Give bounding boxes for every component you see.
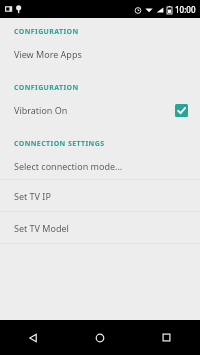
staticText: View More Apps (14, 48, 188, 60)
staticText: Select connection mode... (14, 160, 188, 172)
staticText: CONFIGURATION (14, 27, 79, 37)
button[interactable]: Home (66, 320, 133, 355)
staticText: Set TV IP (14, 190, 188, 202)
staticText: CONFIGURATION (14, 83, 79, 93)
button[interactable]: Back (0, 320, 66, 355)
button[interactable]: Vibration On checkbox (175, 104, 188, 117)
button[interactable]: View More Apps (0, 41, 200, 67)
staticText: 10:00 (175, 4, 196, 15)
staticText: Set TV Model (14, 222, 188, 234)
button[interactable]: Recents (133, 320, 200, 355)
button[interactable]: Set TV IP (0, 180, 200, 211)
button[interactable]: Vibration On (0, 97, 200, 123)
button[interactable]: Select connection mode... (0, 153, 200, 179)
staticText: Vibration On (14, 104, 175, 116)
button[interactable]: Set TV Model (0, 212, 200, 243)
staticText: CONNECTION SETTINGS (14, 139, 105, 149)
